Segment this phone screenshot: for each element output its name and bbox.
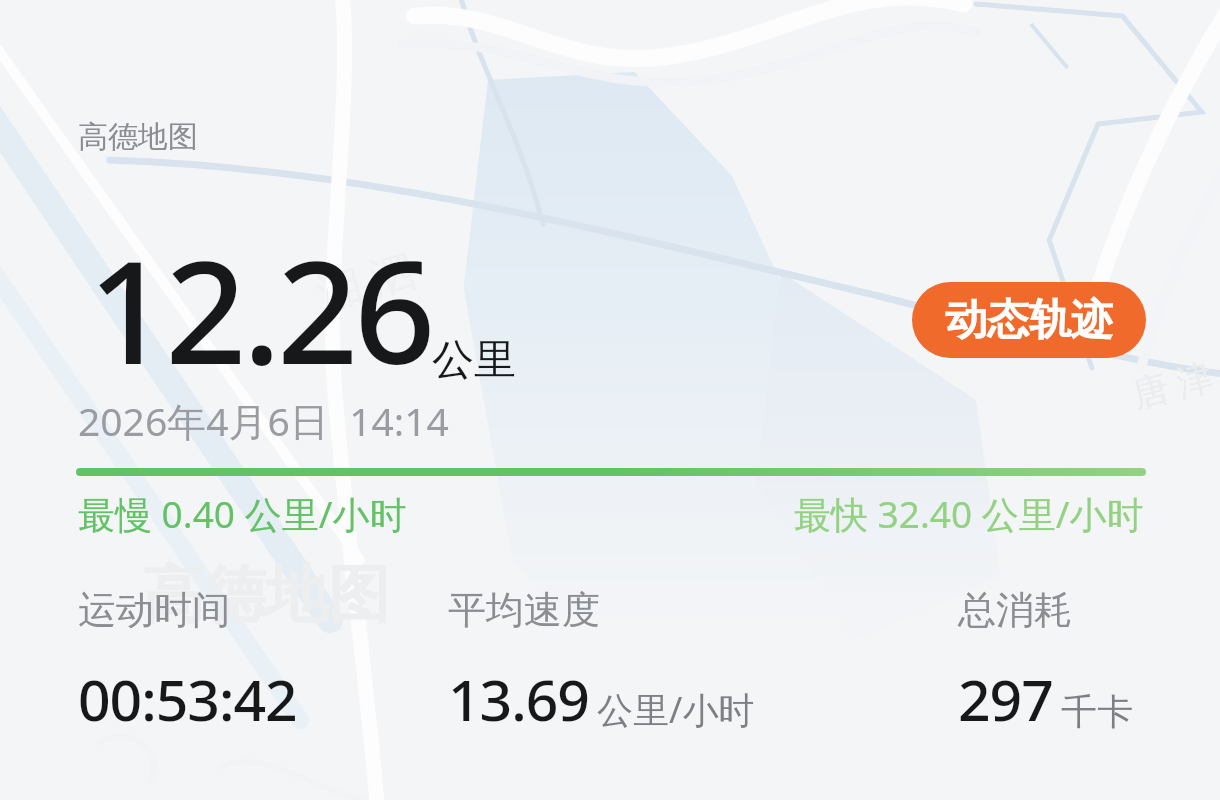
staticText: 公里 [432,334,516,387]
staticText: 唐 津 [1127,351,1219,418]
button[interactable]: 运动时间 [78,586,297,738]
staticText: 平均速度 [448,586,600,634]
staticText: 297 [958,660,1053,738]
button[interactable]: 总消耗 [958,586,1133,738]
staticText: 13.69 [448,660,589,738]
button[interactable]: 平均速度 [448,586,755,738]
staticText: 高德地图 [142,556,390,634]
staticText: 总消耗 [958,586,1072,634]
staticText: 最慢 0.40 公里/小时 [78,488,407,539]
button[interactable]: 动态轨迹 [912,282,1146,358]
staticText: 高德地图 [78,118,198,156]
staticText: 00:53:42 [78,660,297,738]
staticText: 千卡 [1061,689,1133,734]
staticText: 运动时间 [78,586,230,634]
staticText: 动态轨迹 [945,294,1113,347]
staticText: 湘 泗 [310,237,422,323]
staticText: 12.26 [88,212,432,405]
staticText: 最快 32.40 公里/小时 [794,488,1144,539]
staticText: 公里/小时 [597,685,755,734]
staticText: 2026年4月6日 14:14 [78,394,449,447]
